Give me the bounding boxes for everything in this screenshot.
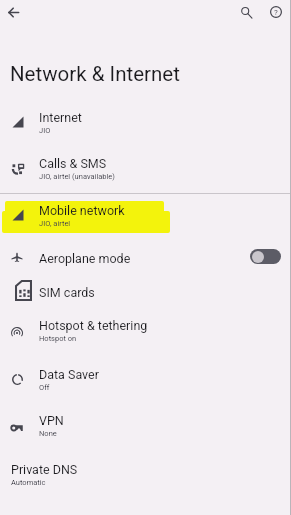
staticText: JIO, airtel [39,219,71,228]
button[interactable]: Search [235,1,257,23]
staticText: None [39,429,57,438]
button[interactable] [0,241,291,274]
staticText: VPN [39,413,64,428]
staticText: Automatic [11,478,46,487]
button[interactable] [0,309,291,355]
button[interactable]: Back [2,1,24,23]
staticText: Aeroplane mode [39,251,131,266]
staticText: Calls & SMS [39,156,107,171]
button[interactable]: Help [265,1,287,23]
button[interactable] [0,403,291,449]
button[interactable] [0,96,291,142]
staticText: ? [274,8,278,17]
staticText: Mobile network [39,203,125,218]
staticText: SIM cards [39,285,95,300]
button[interactable] [0,452,291,498]
staticText: Network & Internet [10,62,180,86]
staticText: Data Saver [39,367,99,382]
button[interactable] [0,142,291,188]
staticText: JIO [39,126,51,135]
staticText: Off [39,383,50,392]
button[interactable]: Aeroplane mode toggle [250,249,281,264]
staticText: Hotspot on [39,334,77,343]
staticText: Hotspot & tethering [39,318,148,333]
button[interactable] [0,275,291,308]
button[interactable] [0,357,291,403]
staticText: JIO, airtel (unavailable) [39,172,115,181]
staticText: Private DNS [11,462,78,477]
button[interactable] [0,193,291,239]
staticText: Internet [39,110,82,125]
